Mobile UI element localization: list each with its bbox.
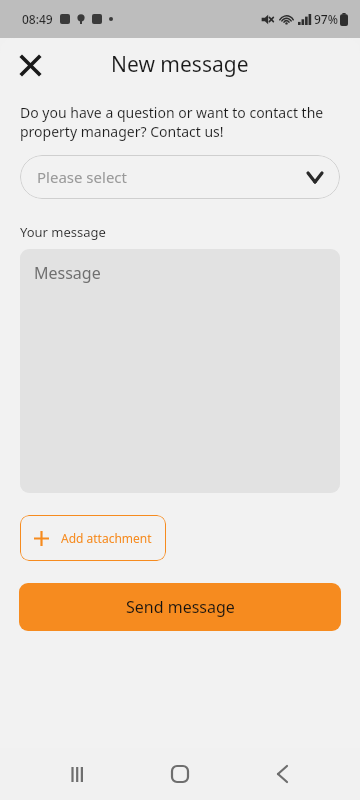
button[interactable]: Send message: [19, 583, 341, 631]
button[interactable]: Recent apps: [54, 750, 102, 798]
staticText: Message: [34, 262, 101, 284]
staticText: New message: [111, 50, 249, 79]
staticText: Your message: [20, 223, 106, 241]
staticText: 97%: [314, 11, 338, 27]
staticText: Add attachment: [61, 530, 152, 546]
button[interactable]: Please select: [20, 155, 340, 199]
staticText: Do you have a question or want to contac…: [20, 103, 332, 141]
staticText: 08:49: [22, 11, 53, 27]
button[interactable]: Close: [8, 43, 52, 87]
button[interactable]: Message: [20, 249, 340, 493]
staticText: Please select: [37, 167, 127, 187]
button[interactable]: Home: [156, 750, 204, 798]
staticText: Send message: [126, 596, 235, 618]
button[interactable]: Add attachment: [20, 515, 166, 561]
button[interactable]: Back: [258, 750, 306, 798]
